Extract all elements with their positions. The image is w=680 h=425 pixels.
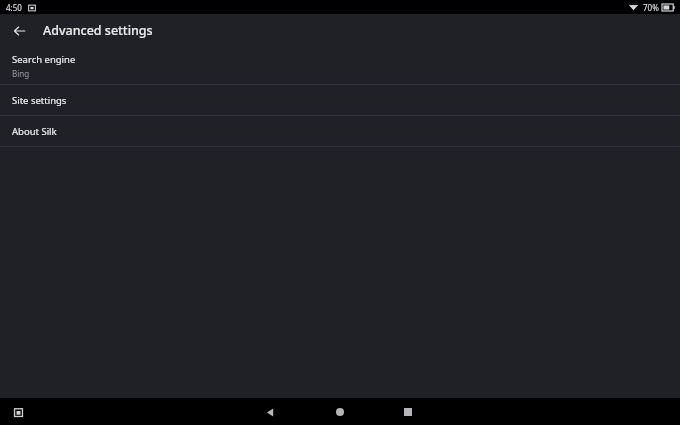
staticText: Bing	[12, 68, 30, 79]
staticText: Site settings	[12, 94, 67, 107]
button[interactable]: Screenshot	[8, 402, 28, 422]
staticText: Search engine	[12, 53, 76, 66]
staticText: 4:50	[6, 2, 22, 13]
button[interactable]: Site settings	[0, 85, 680, 115]
button[interactable]: Recent apps	[396, 400, 420, 424]
button[interactable]: Search engine	[0, 47, 680, 84]
staticText: 70%	[643, 2, 659, 13]
button[interactable]: Back	[258, 400, 282, 424]
button[interactable]: Home	[328, 400, 352, 424]
staticText: Advanced settings	[43, 22, 153, 39]
staticText: About Silk	[12, 125, 57, 138]
button[interactable]: Back	[8, 19, 32, 43]
button[interactable]: About Silk	[0, 116, 680, 146]
